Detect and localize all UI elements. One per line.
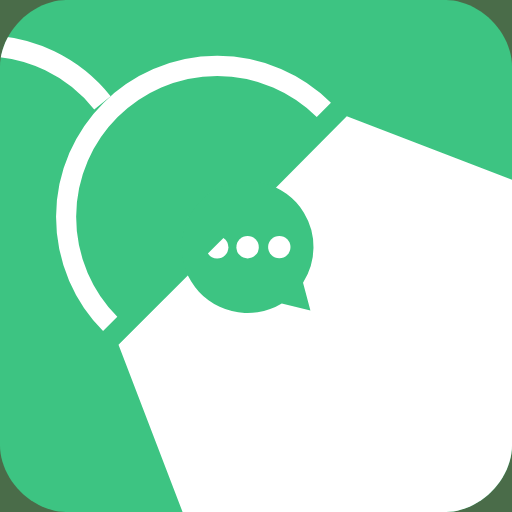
button[interactable]: Open chat app [0, 0, 512, 512]
